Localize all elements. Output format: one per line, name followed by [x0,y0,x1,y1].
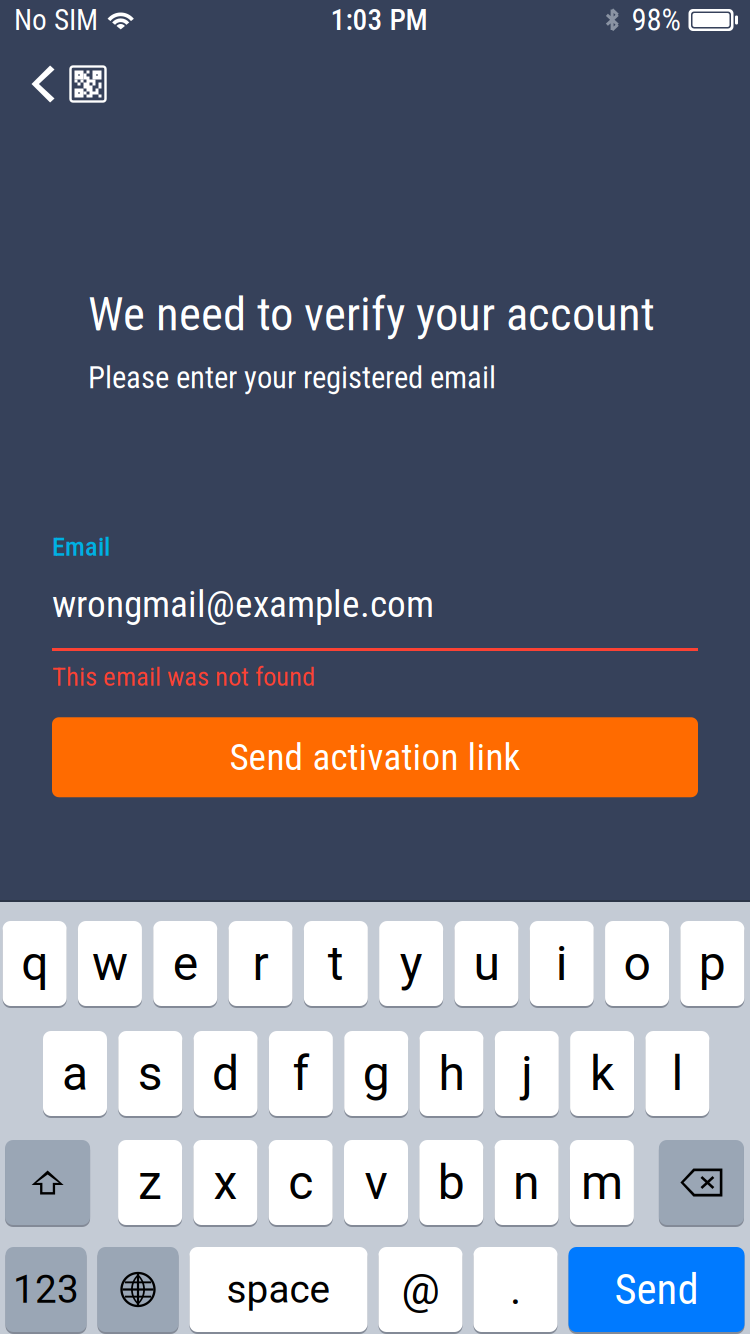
staticText: a [62,1045,88,1102]
staticText: We need to verify your account [88,287,655,342]
button[interactable]: Next keyboard [97,1247,178,1334]
button[interactable]: x [193,1140,257,1227]
staticText: f [292,1045,309,1102]
staticText: i [556,935,568,992]
staticText: space [226,1267,330,1312]
staticText: 123 [13,1267,79,1312]
staticText: Send activation link [229,735,520,779]
staticText: w [92,935,128,992]
button[interactable]: a [43,1031,107,1118]
button[interactable]: w [78,921,142,1008]
button[interactable]: e [153,921,217,1008]
staticText: 1:03 PM [330,3,427,37]
staticText: p [699,935,726,992]
staticText: z [138,1154,162,1211]
staticText: Please enter your registered email [88,360,496,396]
button[interactable]: v [344,1140,408,1227]
staticText: l [671,1045,683,1102]
staticText: This email was not found [52,661,315,692]
staticText: b [438,1154,465,1211]
staticText: g [363,1045,390,1102]
staticText: u [473,935,499,992]
staticText: d [212,1045,239,1102]
staticText: n [513,1154,540,1211]
staticText: e [173,935,198,992]
button[interactable]: p [680,921,744,1008]
staticText: y [400,935,423,992]
button[interactable]: i [530,921,594,1008]
staticText: . [510,1264,521,1314]
staticText: 98% [631,2,680,38]
button[interactable]: z [118,1140,182,1227]
staticText: k [590,1045,614,1102]
button[interactable]: j [495,1031,559,1118]
staticText: s [138,1045,163,1102]
button[interactable]: Back [21,62,65,106]
button[interactable]: s [118,1031,182,1118]
button[interactable]: n [495,1140,559,1227]
button[interactable]: b [419,1140,483,1227]
staticText: Email [52,531,110,562]
staticText: wrongmail@example.com [52,582,434,626]
button[interactable]: Delete [659,1140,744,1227]
button[interactable]: h [419,1031,483,1118]
staticText: q [21,935,48,992]
staticText: m [581,1154,623,1211]
staticText: h [438,1045,464,1102]
button[interactable]: u [454,921,518,1008]
button[interactable]: y [379,921,443,1008]
button[interactable]: l [645,1031,709,1118]
button[interactable]: space [189,1247,367,1334]
staticText: j [521,1045,532,1102]
button[interactable]: t [304,921,368,1008]
staticText: r [253,935,269,992]
staticText: Send [614,1264,698,1314]
button[interactable]: k [570,1031,634,1118]
staticText: No SIM [14,3,98,37]
button[interactable]: q [3,921,67,1008]
button[interactable]: Send [568,1247,744,1334]
button[interactable]: d [194,1031,258,1118]
staticText: v [364,1154,387,1211]
button[interactable]: @ [378,1247,462,1334]
button[interactable]: . [473,1247,557,1334]
button[interactable]: r [229,921,293,1008]
button[interactable]: m [570,1140,634,1227]
button[interactable]: Send activation link [52,717,698,797]
staticText: c [288,1154,313,1211]
button[interactable]: 123 [5,1247,86,1334]
button[interactable]: o [605,921,669,1008]
button[interactable]: c [269,1140,333,1227]
staticText: @ [401,1264,439,1314]
button[interactable]: Scan QR code [66,62,110,106]
button[interactable]: g [344,1031,408,1118]
staticText: x [213,1154,237,1211]
button[interactable]: f [269,1031,333,1118]
button[interactable]: Shift [5,1140,90,1227]
staticText: t [328,935,344,992]
staticText: o [623,935,650,992]
